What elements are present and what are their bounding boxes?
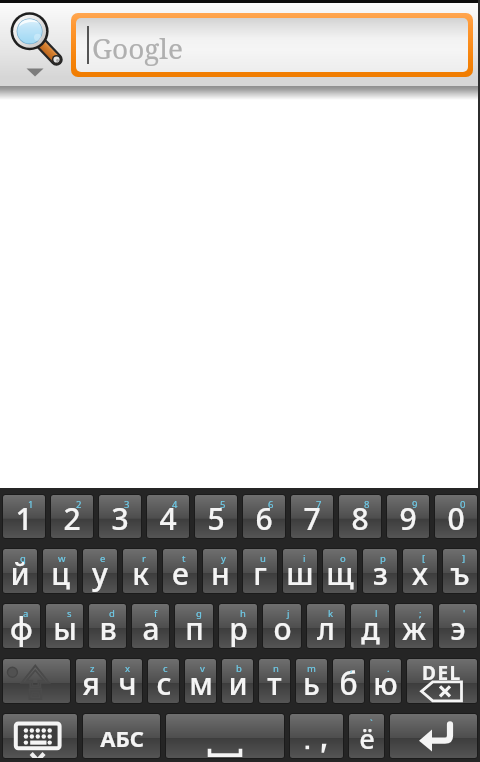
button[interactable]: ъ: [443, 549, 477, 593]
button[interactable]: ч: [112, 659, 142, 703]
button[interactable]: Period and comma: [290, 714, 343, 758]
button[interactable]: у: [83, 549, 117, 593]
staticText: ш: [286, 553, 314, 593]
button[interactable]: п: [175, 604, 213, 648]
staticText: г: [253, 553, 267, 593]
button[interactable]: 8: [339, 495, 381, 538]
button[interactable]: 0: [435, 495, 477, 538]
button[interactable]: л: [307, 604, 345, 648]
staticText: 3: [124, 498, 130, 511]
staticText: 8: [351, 498, 369, 538]
button[interactable]: 9: [387, 495, 429, 538]
staticText: п: [185, 608, 204, 648]
button[interactable]: ю: [370, 659, 401, 703]
staticText: o: [340, 552, 346, 565]
staticText: g: [196, 607, 202, 620]
staticText: б: [339, 663, 358, 703]
staticText: `: [370, 717, 373, 730]
button[interactable]: т: [259, 659, 290, 703]
staticText: i: [303, 552, 306, 565]
staticText: у: [92, 553, 108, 593]
staticText: 6: [268, 498, 274, 511]
button[interactable]: 5: [195, 495, 237, 538]
staticText: о: [273, 608, 292, 648]
button[interactable]: ц: [43, 549, 77, 593]
button[interactable]: ш: [283, 549, 317, 593]
button[interactable]: а: [132, 604, 169, 648]
staticText: 1: [15, 498, 33, 538]
button[interactable]: к: [123, 549, 157, 593]
staticText: 7: [316, 498, 322, 511]
staticText: 0: [447, 498, 465, 538]
staticText: д: [361, 608, 380, 648]
button[interactable]: ё: [349, 714, 384, 758]
staticText: 4: [159, 498, 177, 538]
button[interactable]: 6: [243, 495, 285, 538]
button[interactable]: 4: [147, 495, 189, 538]
staticText: f: [154, 607, 158, 620]
staticText: 1: [28, 498, 34, 511]
button[interactable]: Shift: [3, 659, 70, 703]
staticText: 0: [460, 498, 466, 511]
button[interactable]: Hide keyboard: [3, 714, 77, 758]
button[interactable]: г: [243, 549, 277, 593]
staticText: r: [142, 552, 146, 565]
staticText: 3: [111, 498, 129, 538]
button[interactable]: д: [351, 604, 389, 648]
button[interactable]: э: [439, 604, 477, 648]
staticText: ь: [303, 663, 320, 703]
button[interactable]: р: [219, 604, 257, 648]
staticText: 9: [399, 498, 417, 538]
button[interactable]: Space: [166, 714, 284, 758]
button[interactable]: в: [89, 604, 126, 648]
button[interactable]: 3: [99, 495, 141, 538]
button[interactable]: щ: [323, 549, 357, 593]
button[interactable]: я: [76, 659, 106, 703]
staticText: h: [240, 607, 246, 620]
staticText: j: [287, 607, 290, 620]
button[interactable]: м: [185, 659, 216, 703]
staticText: Google: [92, 29, 184, 67]
button[interactable]: й: [3, 549, 37, 593]
button[interactable]: з: [363, 549, 397, 593]
staticText: ж: [402, 608, 426, 648]
staticText: м: [189, 663, 213, 703]
staticText: щ: [326, 553, 354, 593]
button[interactable]: Delete: [407, 659, 477, 703]
staticText: 6: [255, 498, 273, 538]
button[interactable]: с: [148, 659, 179, 703]
staticText: DEL: [422, 660, 462, 686]
staticText: ц: [51, 553, 70, 593]
button[interactable]: 2: [51, 495, 93, 538]
staticText: 7: [303, 498, 321, 538]
staticText: ъ: [450, 553, 470, 593]
button[interactable]: х: [403, 549, 437, 593]
button[interactable]: ы: [46, 604, 83, 648]
staticText: a: [23, 607, 29, 620]
button[interactable]: е: [163, 549, 197, 593]
staticText: и: [228, 663, 248, 703]
button[interactable]: Enter: [390, 714, 477, 758]
staticText: p: [380, 552, 386, 565]
button[interactable]: Google: [76, 18, 468, 72]
button[interactable]: ь: [296, 659, 327, 703]
button[interactable]: АБС: [83, 714, 160, 758]
staticText: q: [20, 552, 26, 565]
staticText: n: [273, 662, 279, 675]
button[interactable]: 1: [3, 495, 45, 538]
button[interactable]: и: [222, 659, 253, 703]
button[interactable]: Search provider: [0, 0, 71, 77]
button[interactable]: 7: [291, 495, 333, 538]
staticText: р: [229, 608, 248, 648]
staticText: й: [10, 553, 30, 593]
button[interactable]: б: [333, 659, 364, 703]
button[interactable]: н: [203, 549, 237, 593]
button[interactable]: ж: [395, 604, 433, 648]
staticText: з: [373, 553, 388, 593]
staticText: [: [422, 552, 426, 565]
button[interactable]: ф: [3, 604, 40, 648]
button[interactable]: о: [263, 604, 301, 648]
staticText: 2: [63, 498, 81, 538]
staticText: y: [221, 552, 226, 565]
staticText: л: [317, 608, 335, 648]
